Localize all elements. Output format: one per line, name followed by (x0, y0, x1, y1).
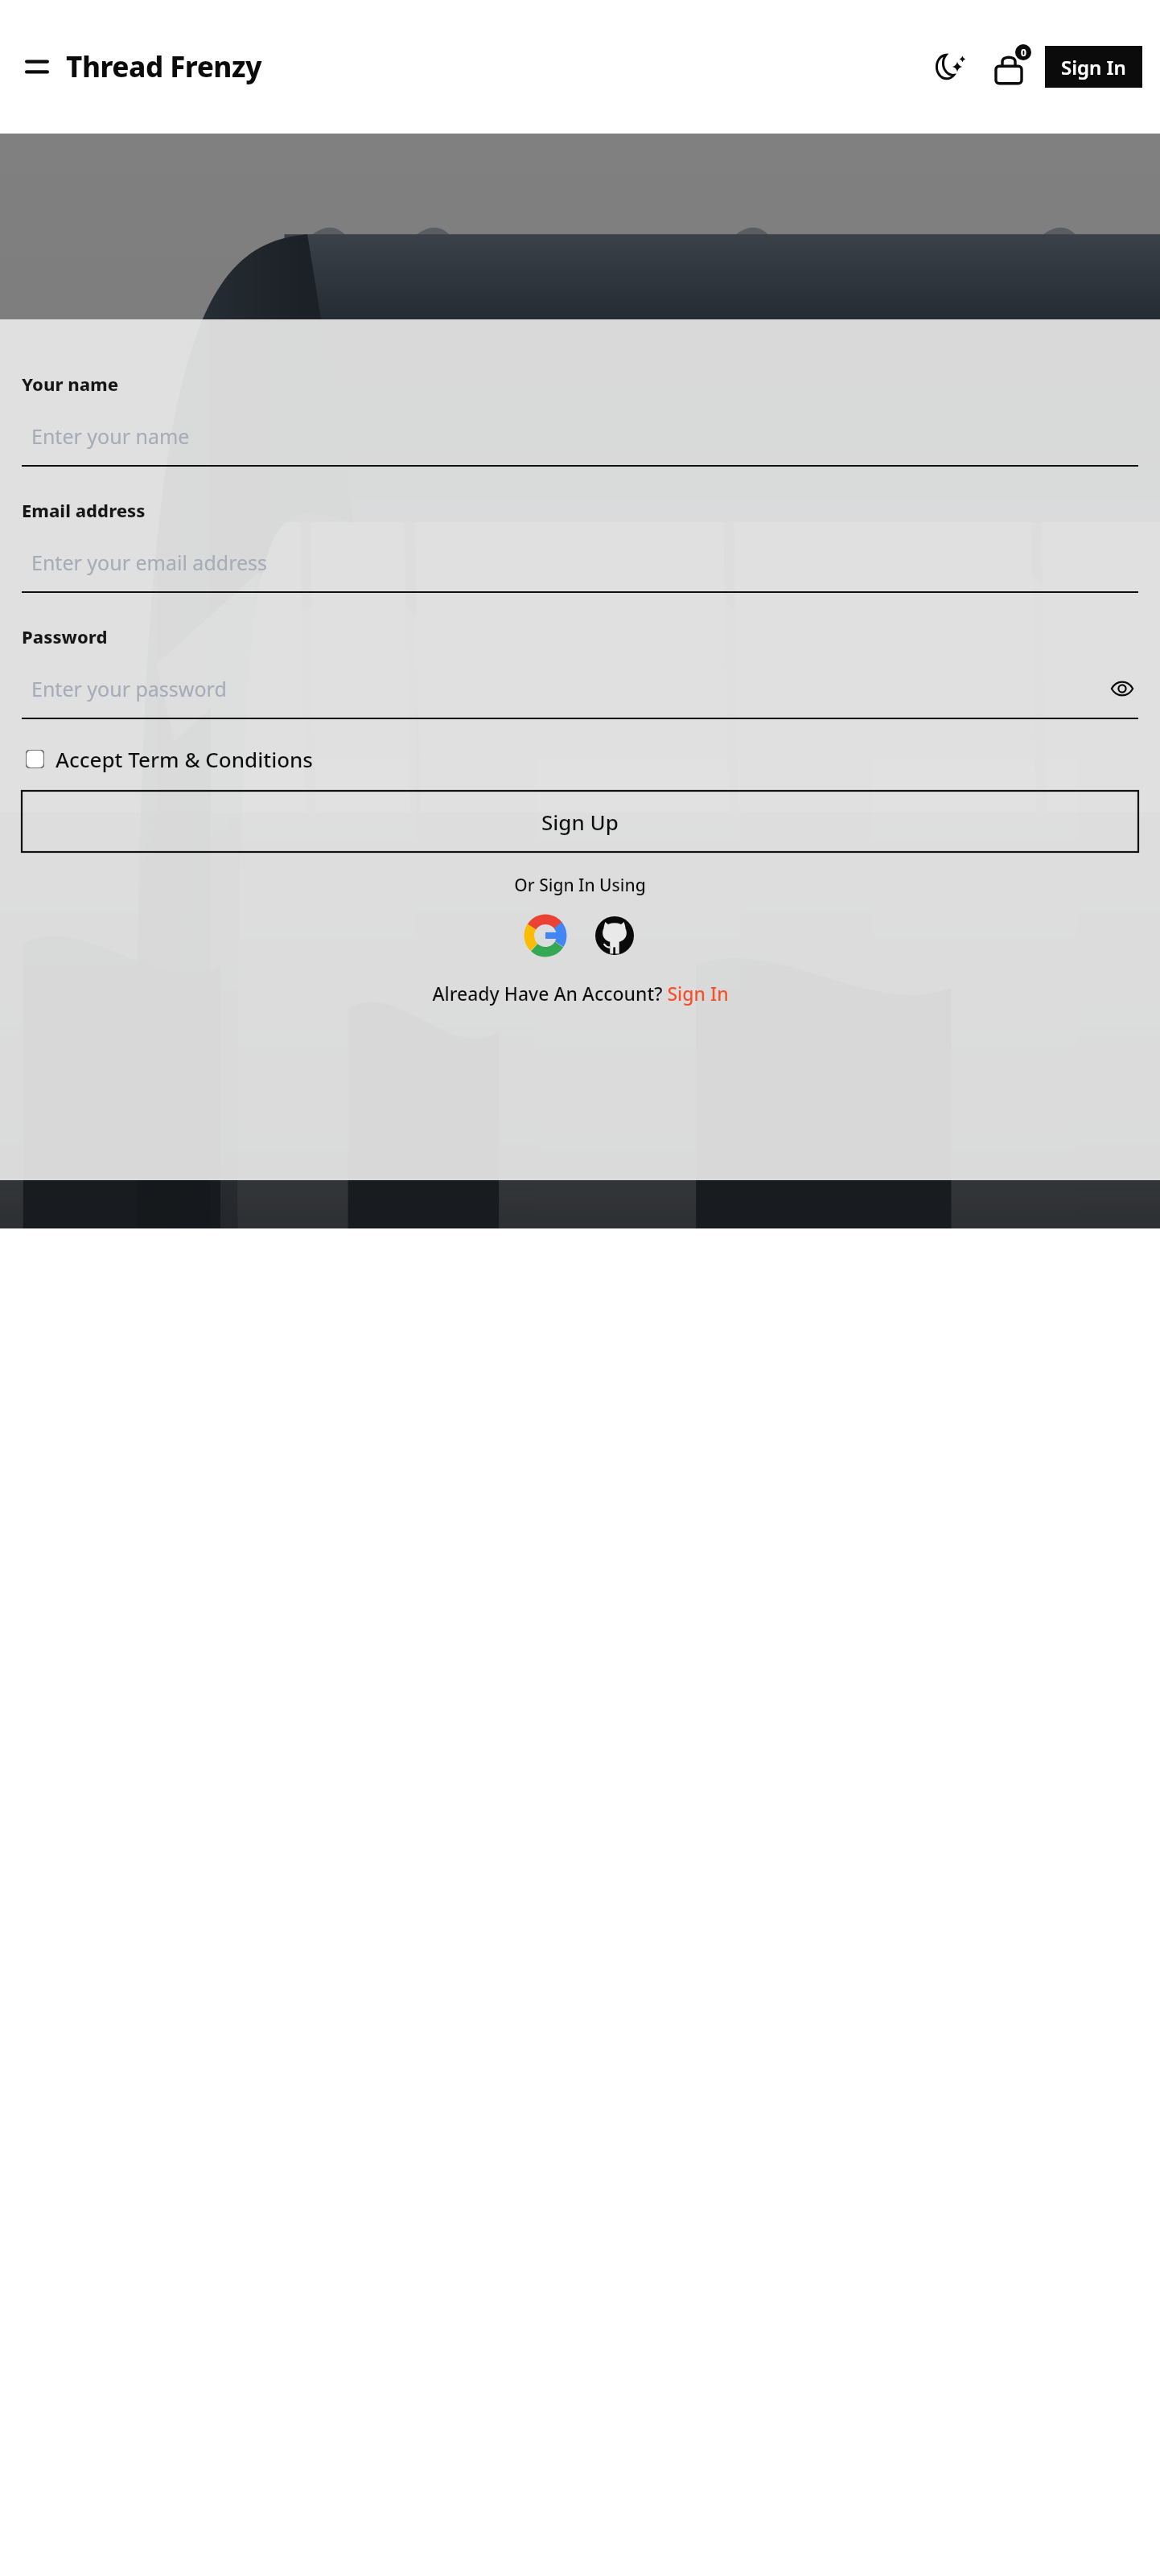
staticText: Password (22, 624, 108, 648)
button[interactable]: Enter your password (22, 668, 1138, 719)
button[interactable]: Sign in with Google (524, 915, 566, 957)
staticText: 0 (1021, 46, 1026, 59)
staticText: Already Have An Account? Sign In (432, 981, 729, 1006)
staticText: Thread Frenzy (66, 47, 262, 86)
button[interactable]: Menu (16, 46, 58, 88)
staticText: Sign In (1061, 54, 1126, 80)
button[interactable]: Already Have An Account? Sign In (22, 981, 1138, 1006)
staticText: Sign Up (541, 808, 619, 836)
button[interactable]: Show password (1106, 673, 1138, 705)
staticText: Or Sign In Using (22, 874, 1138, 897)
staticText: Your name (22, 372, 119, 396)
button[interactable]: Shopping bag, 0 items (985, 43, 1032, 90)
button[interactable]: Sign in with GitHub (594, 915, 636, 957)
staticText: Accept Term & Conditions (56, 745, 313, 773)
staticText: Enter your name (31, 422, 190, 450)
staticText: Enter your email address (31, 549, 268, 576)
staticText: Enter your password (31, 675, 227, 702)
staticText: Email address (22, 498, 146, 522)
button[interactable]: Sign In (1045, 46, 1142, 88)
button[interactable]: Enter your email address (22, 541, 1138, 593)
button[interactable]: Enter your name (22, 415, 1138, 467)
button[interactable]: Accept Term & Conditions (22, 745, 1138, 773)
button[interactable]: Toggle dark mode (928, 43, 974, 90)
button[interactable]: Sign Up (22, 791, 1138, 852)
